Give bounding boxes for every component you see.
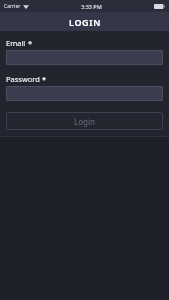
staticText: Email [6, 38, 26, 48]
staticText: Carrier [4, 3, 21, 10]
staticText: Password [6, 74, 40, 84]
button[interactable]: Password input [6, 86, 163, 101]
staticText: * [28, 38, 33, 48]
staticText: 3:33 PM [81, 3, 102, 10]
button[interactable]: Login [6, 112, 163, 130]
button[interactable]: Email input [6, 50, 163, 65]
staticText: LOGIN [69, 16, 101, 28]
staticText: * [42, 74, 47, 84]
staticText: Login [74, 116, 95, 127]
